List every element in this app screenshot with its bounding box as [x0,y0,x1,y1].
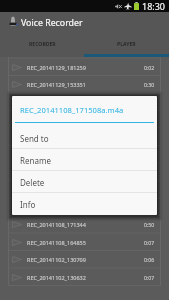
staticText: Send to [20,133,49,144]
staticText: REC_20141108_171350 [27,204,86,211]
button[interactable]: Info [12,193,157,215]
staticText: 0:50 [144,221,155,228]
button[interactable]: Rename [12,149,157,171]
button[interactable]: Send to [12,127,157,149]
staticText: REC_20141108_171430 [27,134,86,141]
staticText: REC_20141102_130709 [27,256,86,263]
button[interactable]: Delete [12,171,157,193]
staticText: REC_20141108_164855 [27,239,86,246]
button[interactable]: REC_20141108_171508 [0,93,169,111]
staticText: 0:30 [144,81,155,88]
button[interactable]: REC_20141108_171344 [0,215,169,233]
staticText: 0:08 [144,116,155,123]
staticText: REC_20141102_130632 [27,274,86,281]
button[interactable]: REC_20141108_171401 [0,163,169,181]
button[interactable]: REC_20141108_171430 [0,128,169,146]
button[interactable]: REC_20141108_171412 [0,145,169,163]
button[interactable]: REC_20141108_171455 [0,110,169,128]
staticText: Info [20,199,36,210]
staticText: Delete [20,177,45,188]
staticText: RECORDER [29,41,56,48]
staticText: 0:07 [144,239,155,246]
staticText: 0:14 [144,186,155,193]
button[interactable]: REC_20141102_130709 [0,250,169,268]
staticText: Voice Recorder [21,17,83,29]
staticText: PLAYER [117,41,136,48]
staticText: REC_20141108_171401 [27,169,86,176]
staticText: 0:07 [144,274,155,281]
staticText: REC_20141108_171508a.m4a [20,105,124,115]
button[interactable]: REC_20141129_181259 [0,58,169,76]
button[interactable]: PLAYER [84,30,169,57]
staticText: REC_20141108_171344 [27,221,86,228]
other: App icon [8,15,18,27]
button[interactable]: REC_20141129_153351 [0,75,169,93]
staticText: REC_20141108_171455 [27,116,86,123]
button[interactable]: REC_20141102_130632 [0,268,169,286]
staticText: 0:06 [144,256,155,263]
staticText: 0:02 [144,64,155,71]
staticText: 18:30 [142,0,166,12]
button[interactable]: RECORDER [0,30,84,57]
staticText: Rename [20,155,51,166]
button[interactable]: REC_20141108_171355 [0,180,169,198]
button[interactable]: REC_20141108_171350 [0,198,169,216]
staticText: REC_20141129_181259 [27,64,86,71]
staticText: REC_20141129_153351 [27,81,86,88]
staticText: REC_20141108_171355 [27,186,86,193]
staticText: 0:05 [144,169,155,176]
button[interactable]: REC_20141108_164855 [0,233,169,251]
